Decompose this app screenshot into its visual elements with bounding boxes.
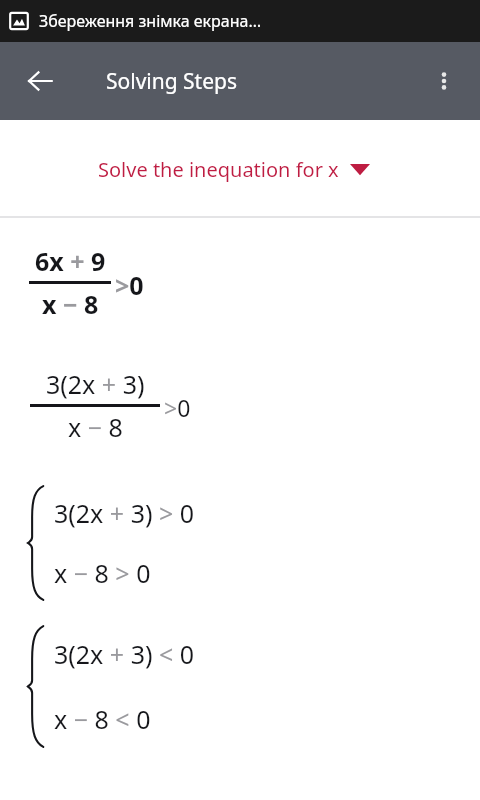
staticText: x − 8: [68, 410, 123, 444]
staticText: Solve the inequation for x: [98, 156, 339, 183]
staticText: Збереження знімка екрана…: [39, 10, 262, 32]
staticText: 3(2x + 3) < 0: [54, 637, 195, 671]
button[interactable]: More options: [420, 57, 468, 105]
staticText: x − 8: [42, 287, 99, 321]
staticText: 6x + 9: [35, 244, 106, 278]
button[interactable]: Solve the inequation for x: [0, 120, 480, 216]
staticText: >0: [115, 268, 144, 302]
staticText: >0: [164, 392, 191, 423]
staticText: 3(2x + 3) > 0: [54, 496, 195, 530]
staticText: 3(2x + 3): [46, 367, 145, 401]
staticText: x − 8 < 0: [54, 702, 151, 736]
staticText: x − 8 > 0: [54, 556, 151, 590]
button[interactable]: Back: [14, 55, 66, 107]
staticText: Solving Steps: [106, 67, 238, 96]
